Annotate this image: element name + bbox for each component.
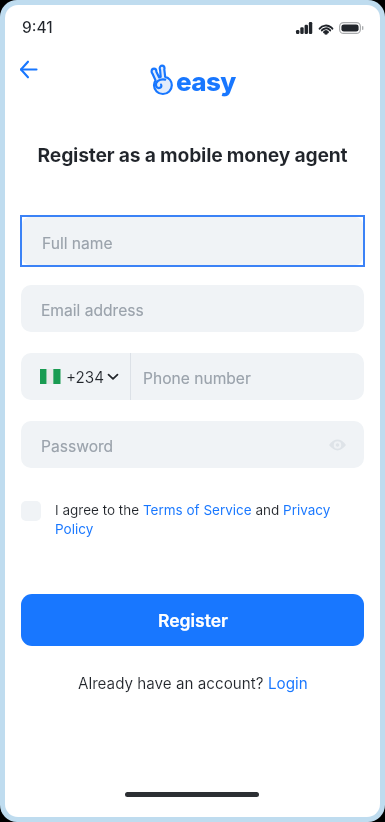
staticText: I agree to the Terms of Service and Priv… bbox=[55, 502, 345, 537]
staticText: +234 bbox=[66, 368, 104, 386]
button[interactable]: Full name bbox=[22, 217, 363, 265]
staticText: Register bbox=[158, 610, 228, 631]
staticText: Full name bbox=[42, 234, 113, 253]
staticText: easy bbox=[176, 66, 236, 97]
staticText: Register as a mobile money agent bbox=[0, 143, 385, 166]
button[interactable]: Show password bbox=[323, 431, 351, 459]
staticText: 9:41 bbox=[22, 18, 53, 37]
staticText: Phone number bbox=[143, 369, 251, 388]
button[interactable]: Login bbox=[268, 674, 308, 692]
button[interactable]: Password bbox=[21, 421, 364, 468]
button[interactable]: Email address bbox=[21, 285, 364, 332]
staticText: Password bbox=[41, 437, 114, 456]
button[interactable]: +234 bbox=[21, 353, 130, 400]
staticText: Already have an account? bbox=[78, 674, 268, 692]
button[interactable]: Agree to terms bbox=[21, 501, 41, 521]
staticText: Email address bbox=[41, 301, 144, 320]
button[interactable]: Register bbox=[21, 594, 364, 646]
button[interactable]: Back bbox=[10, 51, 46, 87]
